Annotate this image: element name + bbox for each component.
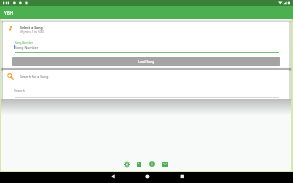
button[interactable]: About <box>149 161 155 167</box>
staticText: Song Number <box>15 41 34 45</box>
staticText: YBH <box>4 10 14 16</box>
staticText: Load Song <box>138 60 155 64</box>
button[interactable]: Load Song <box>12 57 280 66</box>
staticText: Search for a Song <box>20 74 49 79</box>
button[interactable]: Settings <box>124 161 130 167</box>
staticText: Song Number <box>15 45 39 50</box>
staticText: (Hymns 1 to 500) <box>20 30 45 34</box>
button[interactable]: Hymn book <box>136 161 142 167</box>
staticText: Search <box>14 88 25 93</box>
staticText: Select a Song <box>20 25 43 30</box>
button[interactable]: Email <box>162 161 168 167</box>
